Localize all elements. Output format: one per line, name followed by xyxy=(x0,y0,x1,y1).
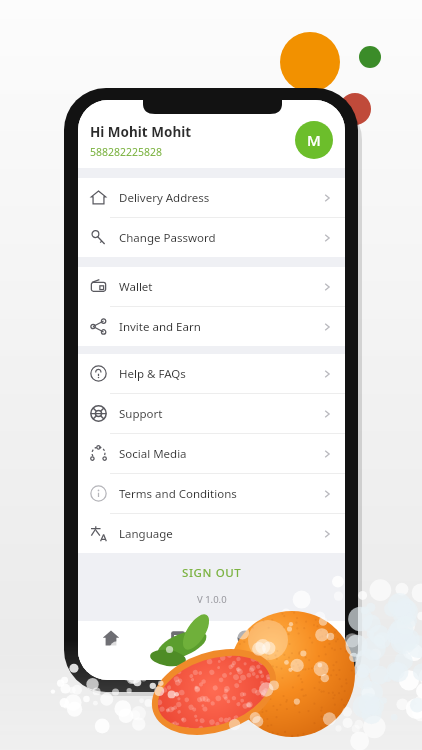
staticText: Delivery Address xyxy=(119,190,321,206)
staticText: M xyxy=(307,130,321,150)
staticText: Support xyxy=(119,406,321,422)
button[interactable]: Invite and Earn xyxy=(78,307,345,346)
staticText: Help & FAQs xyxy=(119,366,321,382)
button[interactable]: Delivery Address xyxy=(78,178,345,217)
button[interactable]: Home xyxy=(78,621,144,677)
staticText: Wallet xyxy=(119,279,321,295)
button[interactable]: Cart xyxy=(211,621,278,677)
button[interactable]: Social Media xyxy=(78,434,345,473)
button[interactable]: Profile xyxy=(278,621,345,677)
staticText: Change Password xyxy=(119,230,321,246)
staticText: Language xyxy=(119,526,321,542)
staticText: Hi Mohit Mohit xyxy=(90,123,192,141)
staticText: V 1.0.0 xyxy=(197,593,227,606)
button[interactable]: SIGN OUT xyxy=(78,553,345,593)
button[interactable]: Orders xyxy=(144,621,211,677)
staticText: Invite and Earn xyxy=(119,319,321,335)
button[interactable]: Terms and Conditions xyxy=(78,474,345,513)
staticText: Social Media xyxy=(119,446,321,462)
staticText: Terms and Conditions xyxy=(119,486,321,502)
button[interactable]: Profile xyxy=(295,121,333,159)
staticText: 588282225828 xyxy=(90,145,163,159)
button[interactable]: Wallet xyxy=(78,267,345,306)
button[interactable]: Help & FAQs xyxy=(78,354,345,393)
staticText: SIGN OUT xyxy=(182,565,242,581)
button[interactable]: Language xyxy=(78,514,345,553)
button[interactable]: Support xyxy=(78,394,345,433)
button[interactable]: Change Password xyxy=(78,218,345,257)
